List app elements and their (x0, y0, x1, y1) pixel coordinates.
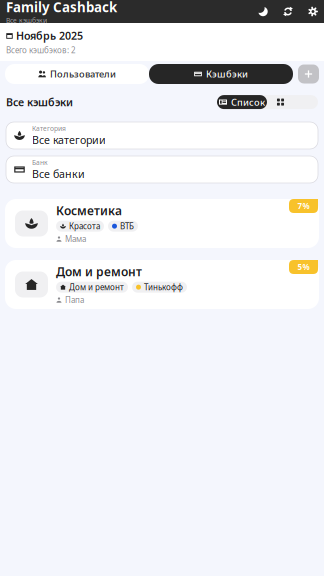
staticText: Кэшбэки (206, 68, 248, 80)
staticText: Ноябрь 2025 (16, 29, 83, 43)
staticText: Все кэшбэки (6, 16, 47, 25)
staticText: Папа (65, 295, 84, 305)
staticText: Список (231, 96, 265, 108)
staticText: Family Cashback (6, 0, 117, 16)
staticText: Категория (32, 124, 66, 133)
button[interactable]: Настройки (308, 6, 318, 16)
staticText: Мама (65, 234, 86, 244)
staticText: Все кэшбэки (6, 95, 73, 109)
staticText: 7% (297, 201, 309, 211)
button[interactable]: Пользователи (5, 64, 149, 84)
button[interactable]: Список (217, 95, 267, 109)
staticText: Косметика (56, 203, 122, 219)
staticText: Все банки (32, 167, 85, 181)
staticText: Красота (69, 221, 100, 231)
staticText: Банк (32, 158, 48, 167)
button[interactable]: Категория (6, 122, 318, 149)
button[interactable]: Тёмная тема (258, 6, 268, 16)
staticText: Тинькофф (144, 282, 183, 292)
staticText: ВТБ (120, 221, 134, 231)
staticText: Всего кэшбэков: 2 (6, 45, 76, 55)
button[interactable]: Сетка (267, 95, 294, 109)
button[interactable]: Дом и ремонт (5, 260, 319, 309)
staticText: Дом и ремонт (69, 282, 124, 292)
button[interactable]: Банк (6, 156, 318, 183)
button[interactable]: Косметика (5, 199, 319, 248)
staticText: Дом и ремонт (56, 264, 142, 280)
button[interactable]: Кэшбэки (149, 64, 293, 84)
staticText: Все категории (32, 133, 106, 147)
staticText: Пользователи (50, 68, 116, 80)
button[interactable]: Обновить (283, 6, 293, 16)
staticText: 5% (297, 262, 309, 272)
button[interactable]: Добавить (298, 64, 319, 83)
